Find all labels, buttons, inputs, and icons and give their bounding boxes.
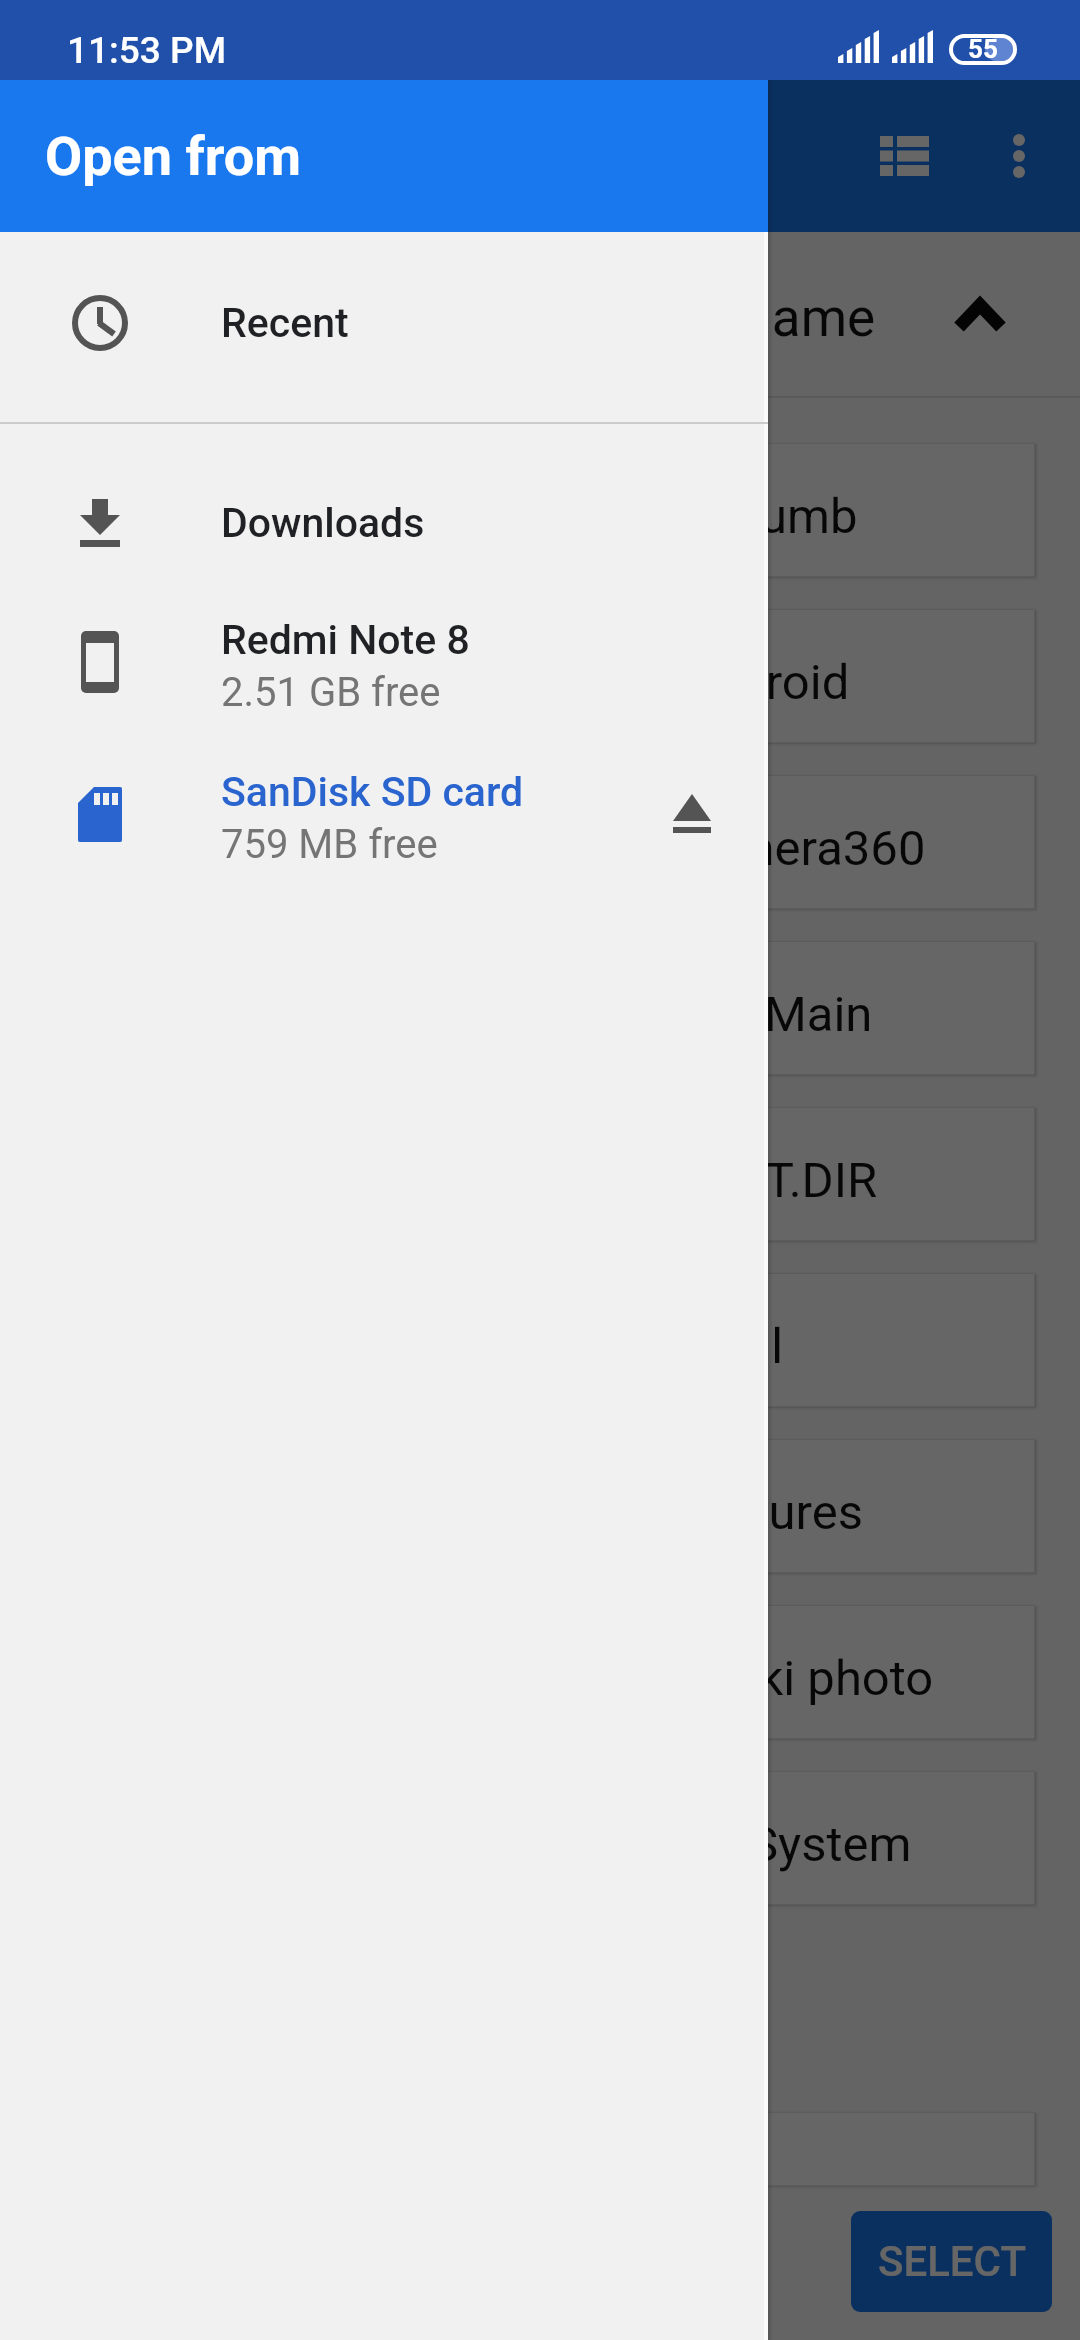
staticText: Sketki photo bbox=[663, 1650, 934, 1707]
button[interactable]: Pictures bbox=[512, 1439, 1035, 1573]
staticText: Camera360 bbox=[673, 820, 926, 877]
button[interactable]: Redmi Note 8 bbox=[0, 607, 768, 725]
button[interactable]: .thumb bbox=[512, 443, 1035, 577]
button[interactable]: LOST.DIR bbox=[512, 1107, 1035, 1241]
button[interactable]: List view bbox=[830, 87, 978, 225]
button[interactable]: Downloads bbox=[0, 463, 768, 583]
staticText: Downloads bbox=[221, 499, 425, 547]
staticText: .thumb bbox=[704, 488, 858, 545]
button[interactable]: SanDisk SD card bbox=[0, 759, 768, 877]
button[interactable]: More options bbox=[950, 87, 1080, 225]
button[interactable]: Mail bbox=[512, 1273, 1035, 1407]
staticText: Pictures bbox=[684, 1484, 863, 1541]
button[interactable]: System bbox=[512, 1771, 1035, 1905]
button[interactable]: Android bbox=[512, 609, 1035, 743]
button[interactable]: Sketki photo bbox=[512, 1605, 1035, 1739]
staticText: Name bbox=[734, 287, 876, 349]
button[interactable]: Recent bbox=[0, 228, 768, 418]
staticText: Open from bbox=[46, 126, 292, 187]
staticText: System bbox=[749, 1816, 912, 1873]
staticText: Android bbox=[679, 654, 850, 711]
staticText: SELECT bbox=[878, 2237, 1026, 2286]
button[interactable]: SELECT bbox=[851, 2211, 1052, 2312]
staticText: Redmi Note 8 bbox=[221, 616, 470, 664]
staticText: LOST.DIR bbox=[677, 1152, 878, 1209]
staticText: 55 bbox=[968, 34, 998, 64]
staticText: 2.51 GB free bbox=[221, 669, 441, 716]
staticText: Recent bbox=[221, 299, 349, 347]
button[interactable]: Eject bbox=[616, 754, 768, 872]
staticText: Open from bbox=[45, 125, 302, 188]
staticText: Mail bbox=[690, 1318, 784, 1375]
staticText: 11:53 PM bbox=[67, 29, 227, 72]
staticText: Main bbox=[764, 986, 873, 1043]
button[interactable]: Main bbox=[512, 941, 1035, 1075]
staticText: SanDisk SD card bbox=[221, 768, 524, 816]
button[interactable]: Name bbox=[0, 232, 1080, 396]
staticText: 759 MB free bbox=[221, 821, 438, 868]
button[interactable]: Camera360 bbox=[512, 775, 1035, 909]
button[interactable] bbox=[512, 2112, 1035, 2186]
